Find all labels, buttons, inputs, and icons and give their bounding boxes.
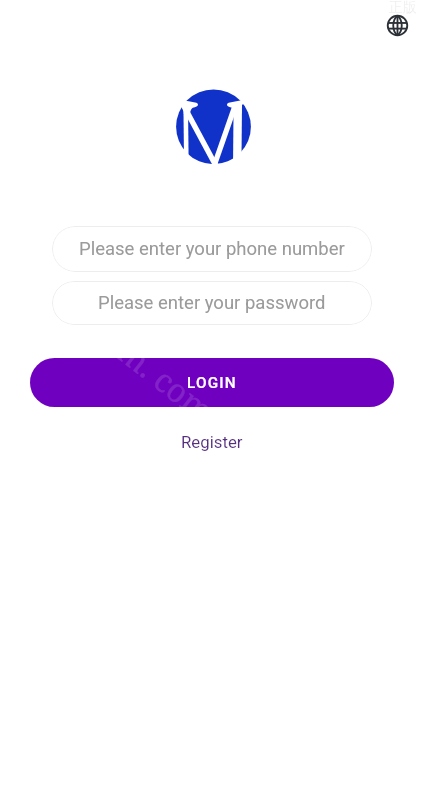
button[interactable]: Change language: [383, 11, 411, 39]
button[interactable]: Register: [176, 428, 248, 456]
button[interactable]: LOGIN: [30, 358, 394, 407]
staticText: Please enter your phone number: [79, 238, 345, 260]
staticText: 正版: [389, 0, 417, 15]
staticText: Register: [181, 432, 243, 452]
staticText: m. com: [108, 329, 224, 433]
staticText: LOGIN: [187, 374, 237, 392]
button[interactable]: Please enter your password: [52, 281, 372, 325]
staticText: Please enter your password: [98, 292, 326, 314]
button[interactable]: Please enter your phone number: [52, 226, 372, 272]
